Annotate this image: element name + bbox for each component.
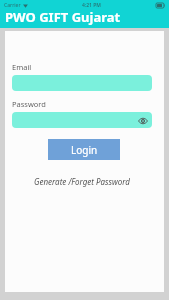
button[interactable]: Show password — [137, 115, 148, 126]
staticText: Login — [71, 143, 98, 157]
button[interactable]: Email input — [12, 75, 152, 91]
staticText: Carrier — [4, 2, 21, 9]
button[interactable]: Password input — [12, 112, 152, 128]
staticText: 4:21 PM — [82, 2, 101, 9]
button[interactable]: Login — [48, 139, 120, 160]
staticText: PWO GIFT Gujarat — [5, 8, 121, 26]
staticText: Email — [12, 62, 32, 72]
button[interactable]: Generate /Forget Password — [12, 176, 152, 187]
staticText: Password — [12, 99, 46, 109]
staticText: Generate /Forget Password — [34, 176, 130, 187]
